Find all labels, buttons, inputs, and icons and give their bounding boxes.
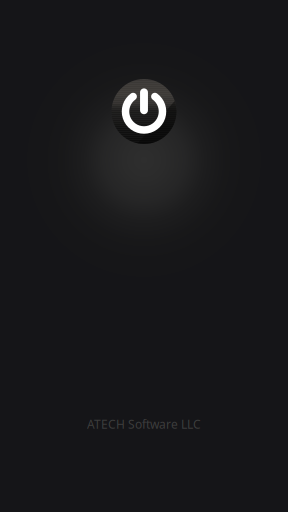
- staticText: ATECH Software LLC: [87, 416, 201, 432]
- button[interactable]: Power: [111, 79, 176, 144]
